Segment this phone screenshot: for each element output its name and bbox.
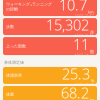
staticText: 体脂肪率 — [6, 73, 22, 78]
staticText: % — [91, 78, 94, 83]
staticText: km — [88, 9, 94, 14]
staticText: 体重 — [6, 92, 14, 97]
staticText: kg — [90, 97, 94, 100]
staticText: 10/25 21:57 — [75, 54, 94, 57]
staticText: 11 — [73, 34, 89, 54]
staticText: 歩 — [90, 30, 94, 34]
staticText: 10/25 21:57 — [75, 14, 94, 18]
staticText: ウォーキング+ランニング の距離 — [6, 1, 52, 12]
staticText: 上った階数 — [6, 44, 26, 48]
button[interactable]: 歩数 — [3, 18, 97, 35]
staticText: 10/25 23:00 — [75, 83, 94, 87]
staticText: 10/25 21:57 — [75, 34, 94, 38]
staticText: 階 — [90, 49, 94, 54]
button[interactable]: 体重 — [3, 86, 97, 100]
button[interactable]: 上った階数 — [3, 37, 97, 55]
staticText: 25.3 — [62, 64, 90, 83]
staticText: 身体測定値 — [4, 60, 24, 65]
button[interactable]: ウォーキング+ランニング の距離 — [3, 0, 97, 16]
staticText: 68.2 — [61, 83, 89, 100]
button[interactable]: 体脂肪率 — [3, 67, 97, 84]
staticText: 歩数 — [6, 24, 14, 29]
staticText: 10.7 — [59, 0, 87, 14]
staticText: 15,302 — [46, 15, 89, 34]
